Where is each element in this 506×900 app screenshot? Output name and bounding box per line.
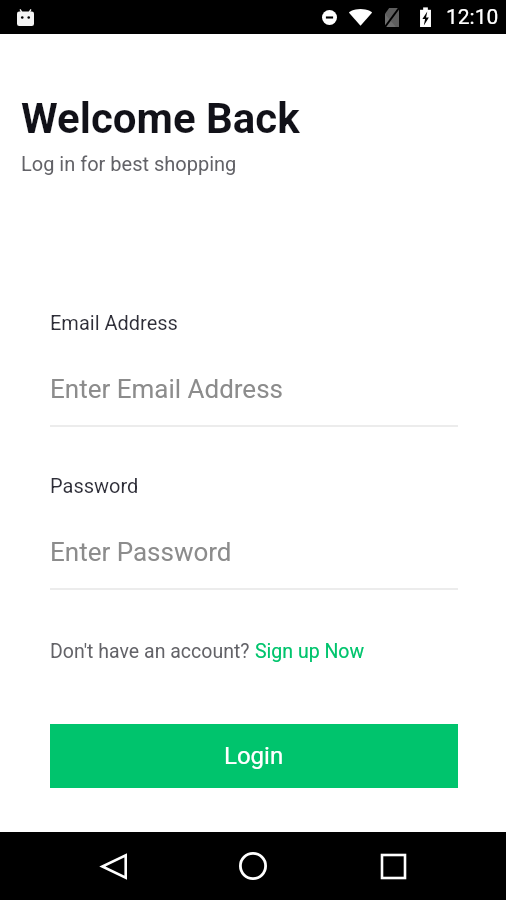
staticText: Login xyxy=(224,742,284,770)
staticText: 12:10 xyxy=(446,5,499,30)
staticText: Sign up Now xyxy=(255,640,365,663)
button[interactable]: Enter Password xyxy=(50,520,458,591)
staticText: Enter Email Address xyxy=(50,374,283,404)
button[interactable]: Login xyxy=(50,724,458,788)
staticText: Enter Password xyxy=(50,537,232,567)
staticText: Email Address xyxy=(50,311,178,334)
button[interactable]: Back xyxy=(88,840,140,892)
staticText: Don't have an account? xyxy=(50,640,255,663)
button[interactable]: Sign up Now xyxy=(255,640,365,663)
staticText: Password xyxy=(50,474,139,497)
button[interactable]: Home xyxy=(227,840,279,892)
button[interactable]: Enter Email Address xyxy=(50,357,458,428)
button[interactable]: Recents xyxy=(367,840,419,892)
staticText: Welcome Back xyxy=(21,94,300,143)
staticText: Log in for best shopping xyxy=(21,152,237,175)
